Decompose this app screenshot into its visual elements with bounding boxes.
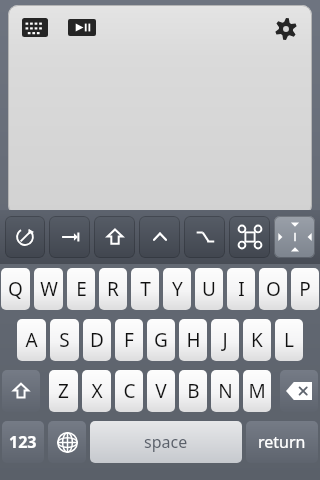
button[interactable]: X	[82, 370, 111, 412]
button[interactable]: C	[115, 370, 143, 412]
button[interactable]: Toggle keyboard	[8, 5, 312, 215]
staticText: R	[107, 276, 119, 302]
button[interactable]: M	[243, 370, 271, 412]
button[interactable]: Play or pause	[65, 17, 99, 37]
staticText: N	[218, 378, 233, 404]
staticText: J	[222, 327, 228, 353]
button[interactable]: I	[227, 268, 255, 310]
staticText: T	[140, 276, 151, 302]
staticText: return	[258, 431, 306, 453]
staticText: S	[59, 327, 70, 353]
button[interactable]: S	[50, 319, 79, 361]
staticText: Z	[58, 378, 69, 404]
button[interactable]: T	[131, 268, 159, 310]
button[interactable]: O	[259, 268, 287, 310]
staticText: M	[248, 378, 266, 404]
button[interactable]: Q	[1, 268, 30, 310]
button[interactable]: space	[90, 421, 242, 463]
staticText: F	[124, 327, 134, 353]
button[interactable]: J	[211, 319, 239, 361]
staticText: L	[284, 327, 294, 353]
button[interactable]: Shift	[2, 370, 40, 412]
staticText: I	[238, 276, 245, 302]
staticText: B	[187, 378, 200, 404]
staticText: V	[155, 378, 167, 404]
staticText: O	[266, 276, 281, 302]
button[interactable]: B	[179, 370, 207, 412]
button[interactable]: Z	[49, 370, 78, 412]
button[interactable]: Control	[139, 216, 180, 258]
staticText: P	[299, 276, 311, 302]
button[interactable]: H	[179, 319, 207, 361]
button[interactable]: Shift	[94, 216, 135, 258]
button[interactable]: W	[34, 268, 63, 310]
staticText: H	[186, 327, 201, 353]
button[interactable]: Backspace	[280, 370, 318, 412]
staticText: G	[154, 327, 168, 353]
button[interactable]: Tab	[49, 216, 90, 258]
button[interactable]: R	[99, 268, 127, 310]
staticText: K	[251, 327, 263, 353]
button[interactable]: 123	[2, 421, 44, 463]
button[interactable]: Change language	[48, 421, 86, 463]
staticText: 123	[9, 431, 37, 453]
button[interactable]: E	[67, 268, 95, 310]
button[interactable]: return	[246, 421, 318, 463]
button[interactable]: A	[17, 319, 46, 361]
staticText: A	[25, 327, 38, 353]
button[interactable]: Escape	[5, 216, 45, 258]
staticText: D	[90, 327, 104, 353]
staticText: Q	[8, 276, 23, 302]
staticText: E	[76, 276, 87, 302]
staticText: W	[40, 276, 58, 302]
button[interactable]: Settings	[272, 15, 300, 43]
button[interactable]: U	[195, 268, 223, 310]
button[interactable]: Arrow keys	[274, 216, 315, 258]
staticText: C	[123, 378, 136, 404]
staticText: space	[144, 431, 188, 453]
button[interactable]: D	[83, 319, 111, 361]
button[interactable]: Y	[163, 268, 191, 310]
staticText: X	[91, 378, 103, 404]
button[interactable]: Option	[184, 216, 225, 258]
button[interactable]: V	[147, 370, 175, 412]
button[interactable]: Toggle keyboard	[19, 15, 51, 39]
button[interactable]: Command	[229, 216, 270, 258]
staticText: U	[202, 276, 216, 302]
staticText: Y	[172, 276, 183, 302]
button[interactable]: P	[291, 268, 319, 310]
button[interactable]: G	[147, 319, 175, 361]
button[interactable]: L	[275, 319, 303, 361]
button[interactable]: F	[115, 319, 143, 361]
button[interactable]: K	[243, 319, 271, 361]
button[interactable]: N	[211, 370, 239, 412]
